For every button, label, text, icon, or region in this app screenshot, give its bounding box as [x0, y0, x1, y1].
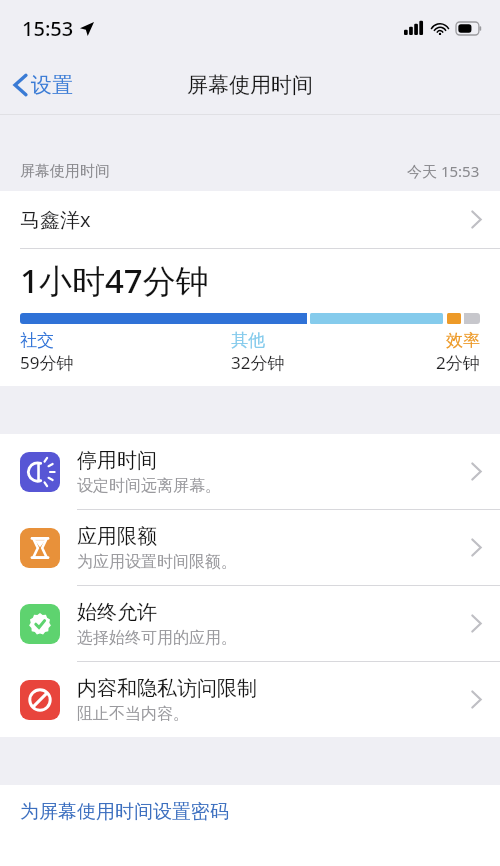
button[interactable]: 始终允许: [0, 586, 500, 661]
button[interactable]: 应用限额: [0, 510, 500, 585]
staticText: 社交: [20, 330, 54, 351]
staticText: 32分钟: [231, 351, 285, 374]
staticText: 选择始终可用的应用。: [77, 628, 237, 648]
button[interactable]: 内容和隐私访问限制: [0, 662, 500, 737]
staticText: 效率: [446, 330, 480, 351]
staticText: 始终允许: [77, 600, 157, 625]
staticText: 内容和隐私访问限制: [77, 676, 257, 701]
staticText: 屏幕使用时间: [187, 72, 313, 98]
staticText: 为屏幕使用时间设置密码: [20, 800, 229, 824]
other: 内容和隐私访问限制: [20, 680, 60, 720]
other: 始终允许: [20, 604, 60, 644]
button[interactable]: 停用时间: [0, 434, 500, 509]
staticText: 阻止不当内容。: [77, 704, 189, 724]
staticText: 停用时间: [77, 448, 157, 473]
button[interactable]: 为屏幕使用时间设置密码: [0, 785, 500, 866]
staticText: 2分钟: [436, 351, 480, 374]
staticText: 1小时47分钟: [20, 258, 209, 303]
staticText: 15:53: [22, 15, 74, 42]
other: 应用限额: [20, 528, 60, 568]
staticText: 屏幕使用时间: [20, 162, 110, 181]
staticText: 应用限额: [77, 524, 157, 549]
staticText: 设定时间远离屏幕。: [77, 476, 221, 496]
staticText: 马鑫洋x: [20, 206, 91, 233]
staticText: 其他: [231, 330, 265, 351]
staticText: 59分钟: [20, 351, 74, 374]
button[interactable]: 马鑫洋x: [0, 191, 500, 248]
other: 停用时间: [20, 452, 60, 492]
staticText: 为应用设置时间限额。: [77, 552, 237, 572]
staticText: 设置: [31, 72, 73, 98]
button[interactable]: 设置: [0, 66, 83, 104]
staticText: 今天 15:53: [407, 161, 480, 181]
